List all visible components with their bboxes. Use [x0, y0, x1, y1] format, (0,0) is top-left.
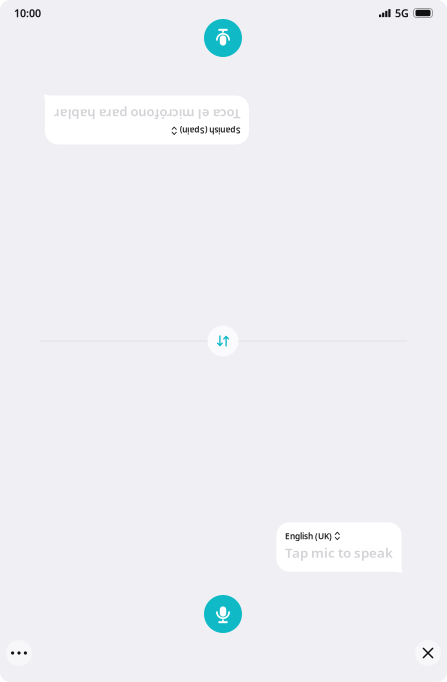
staticText: Toca el micrófono para hablar [53, 117, 240, 134]
staticText: Tap mic to speak [285, 543, 393, 562]
staticText: 5G [395, 6, 409, 20]
button[interactable]: Microphone, Spanish [204, 19, 242, 57]
button[interactable]: Swap languages [207, 325, 238, 356]
button[interactable]: More options [6, 640, 32, 666]
button[interactable]: Close [415, 640, 441, 666]
staticText: Spanish (Spain) [53, 104, 114, 115]
staticText: 10:00 [14, 6, 41, 20]
button[interactable]: Microphone, English [204, 595, 242, 633]
staticText: English (UK) [285, 530, 332, 542]
